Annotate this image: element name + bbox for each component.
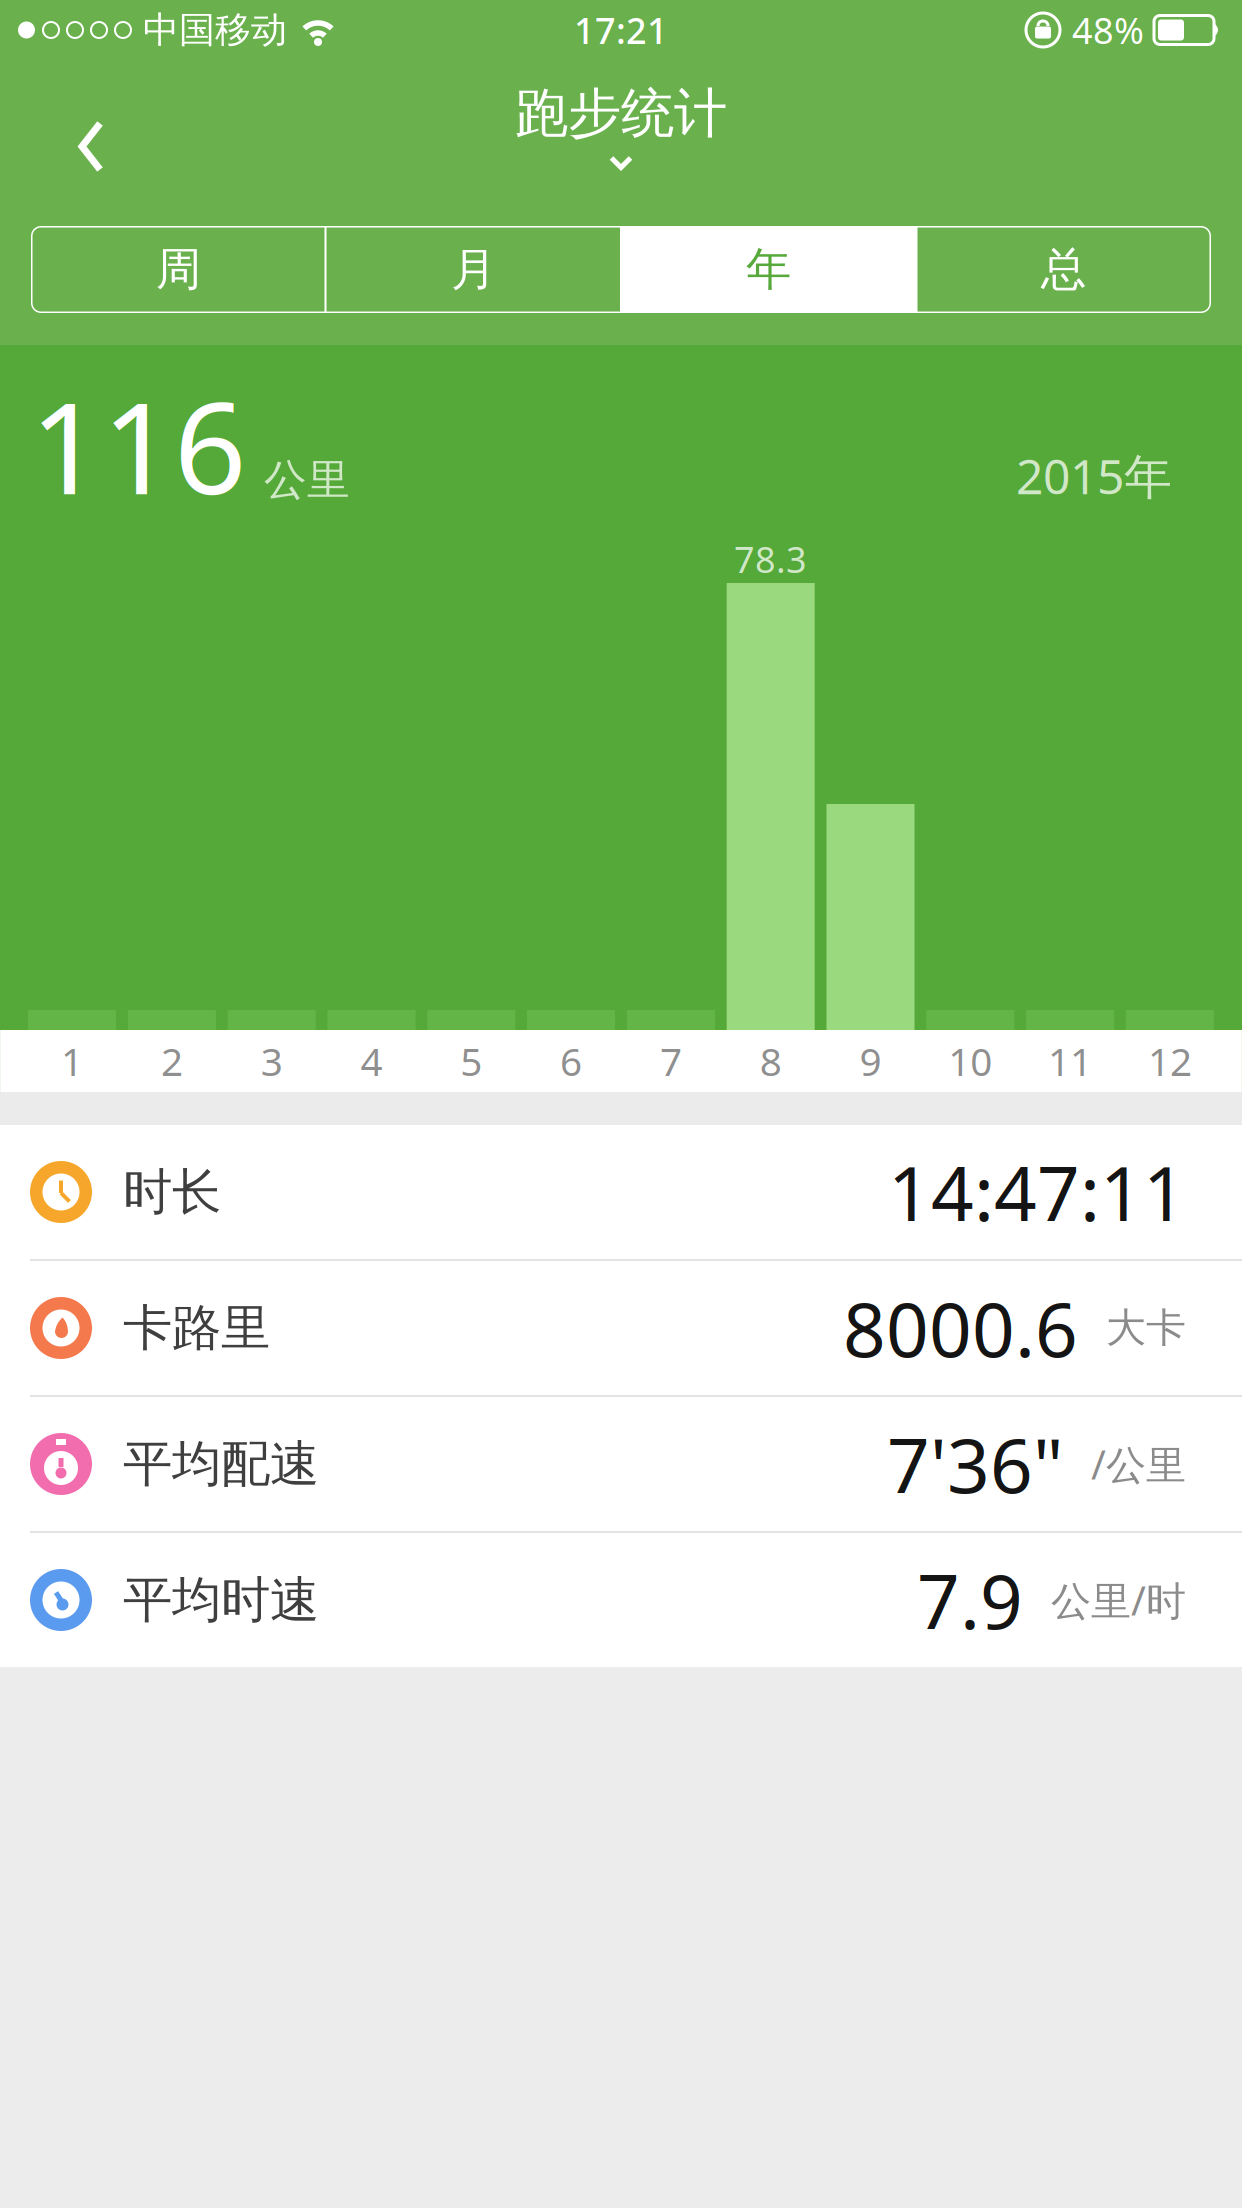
staticText: 116 <box>30 361 246 529</box>
button[interactable]: 月 <box>326 226 621 313</box>
button[interactable]: 年 <box>621 226 916 313</box>
staticText: 总 <box>1041 242 1086 297</box>
staticText: 2 <box>161 1035 183 1087</box>
button[interactable]: 平均时速 <box>0 1533 1242 1667</box>
staticText: 3 <box>261 1035 283 1087</box>
button[interactable]: 总 <box>916 226 1211 313</box>
staticText: 17:21 <box>574 6 668 54</box>
staticText: 卡路里 <box>123 1298 270 1358</box>
button[interactable]: 卡路里 <box>0 1261 1242 1395</box>
button[interactable]: 周 <box>31 226 326 313</box>
staticText: 平均配速 <box>123 1434 319 1494</box>
staticText: 平均时速 <box>123 1570 319 1630</box>
button[interactable]: 选择统计项目 <box>515 83 727 170</box>
staticText: 8000.6 <box>843 1278 1078 1378</box>
staticText: /公里 <box>1091 1437 1186 1490</box>
staticText: 11 <box>1048 1035 1092 1087</box>
staticText: 6 <box>560 1035 582 1087</box>
button[interactable]: 时长 <box>0 1125 1242 1259</box>
staticText: 2015年 <box>1016 444 1172 507</box>
staticText: 8 <box>760 1035 782 1087</box>
staticText: 时长 <box>123 1162 221 1222</box>
staticText: 4 <box>360 1035 382 1087</box>
staticText: 5 <box>460 1035 482 1087</box>
staticText: 7'36" <box>887 1414 1063 1514</box>
staticText: 48% <box>1072 6 1144 54</box>
staticText: 中国移动 <box>143 8 287 52</box>
staticText: 10 <box>948 1035 992 1087</box>
staticText: 公里 <box>264 454 350 506</box>
staticText: 周 <box>156 242 201 297</box>
staticText: 78.3 <box>734 535 807 583</box>
staticText: 14:47:11 <box>888 1142 1186 1242</box>
staticText: 7 <box>660 1035 682 1087</box>
staticText: 1 <box>61 1035 83 1087</box>
button[interactable]: 平均配速 <box>0 1397 1242 1531</box>
staticText: 公里/时 <box>1051 1573 1186 1626</box>
staticText: 7.9 <box>917 1550 1023 1650</box>
staticText: 大卡 <box>1106 1303 1186 1352</box>
staticText: 跑步统计 <box>515 81 727 146</box>
staticText: 月 <box>451 242 496 297</box>
staticText: 9 <box>859 1035 881 1087</box>
button[interactable]: Back <box>0 83 133 202</box>
staticText: 年 <box>746 242 791 297</box>
staticText: 12 <box>1148 1035 1192 1087</box>
